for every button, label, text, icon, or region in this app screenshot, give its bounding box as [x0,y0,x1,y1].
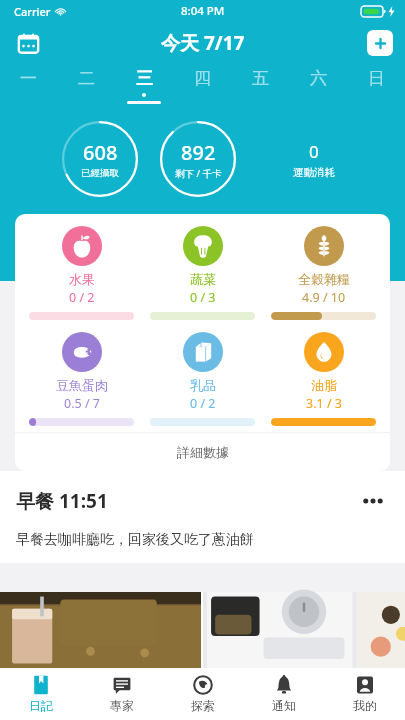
staticText: 已經攝取 [81,167,119,179]
staticText: 我的 [353,698,377,713]
button[interactable]: 四 [173,64,231,110]
staticText: 油脂 [311,377,337,393]
staticText: 蔬菜 [190,271,216,287]
button[interactable]: 一 [0,64,57,110]
staticText: 專家 [110,698,134,713]
button[interactable]: 全穀雜糧 [271,226,376,320]
staticText: 六 [310,68,327,89]
button[interactable]: 水果 [29,226,134,320]
staticText: 日記 [29,698,53,713]
staticText: Carrier [14,4,51,19]
button[interactable]: 詳細數據 [15,433,390,471]
staticText: 運動消耗 [293,166,335,179]
button[interactable]: 五 [231,64,289,110]
button[interactable]: Add record [367,30,393,56]
button[interactable]: 日記 [0,668,81,720]
staticText: 一 [20,68,37,89]
button[interactable]: 專家 [81,668,162,720]
button[interactable]: 892 [160,121,236,197]
staticText: 0 / 3 [190,289,216,306]
button[interactable]: 蔬菜 [150,226,255,320]
staticText: 0 / 2 [190,395,216,412]
staticText: 0.5 / 7 [64,395,100,412]
staticText: 3.1 / 3 [306,395,342,412]
staticText: 608 [83,139,118,166]
staticText: 探索 [191,698,215,713]
button[interactable]: 探索 [162,668,243,720]
button[interactable]: 六 [289,64,347,110]
staticText: 水果 [69,271,95,287]
staticText: 二 [78,68,95,89]
staticText: 豆魚蛋肉 [56,377,108,393]
staticText: 4.9 / 10 [302,289,346,306]
button[interactable]: More options [357,485,389,517]
button[interactable]: 我的 [324,668,405,720]
staticText: 早餐去咖啡廳吃，回家後又吃了蔥油餅 [16,531,254,549]
button[interactable]: Calendar [10,25,46,61]
staticText: 8:04 PM [181,3,225,19]
staticText: 全穀雜糧 [298,271,350,287]
button[interactable]: 豆魚蛋肉 [29,332,134,426]
staticText: 892 [181,139,216,166]
button[interactable] [0,592,201,668]
staticText: 五 [252,68,269,89]
staticText: 早餐 11:51 [16,488,108,514]
button[interactable]: 油脂 [271,332,376,426]
button[interactable]: 三 [115,64,173,110]
staticText: 今天 7/17 [161,30,245,56]
staticText: 日 [368,68,385,89]
staticText: 詳細數據 [177,444,229,460]
button[interactable] [203,592,405,668]
button[interactable]: 乳品 [150,332,255,426]
staticText: 剩下 / 千卡 [175,167,222,180]
staticText: 0 [309,140,319,163]
staticText: 0 / 2 [69,289,95,306]
button[interactable]: 通知 [243,668,324,720]
staticText: 三 [136,68,153,89]
staticText: 四 [194,68,211,89]
button[interactable]: 二 [57,64,115,110]
button[interactable]: 608 [62,121,138,197]
button[interactable]: 日 [347,64,405,110]
staticText: 乳品 [190,377,216,393]
staticText: 通知 [272,698,296,713]
